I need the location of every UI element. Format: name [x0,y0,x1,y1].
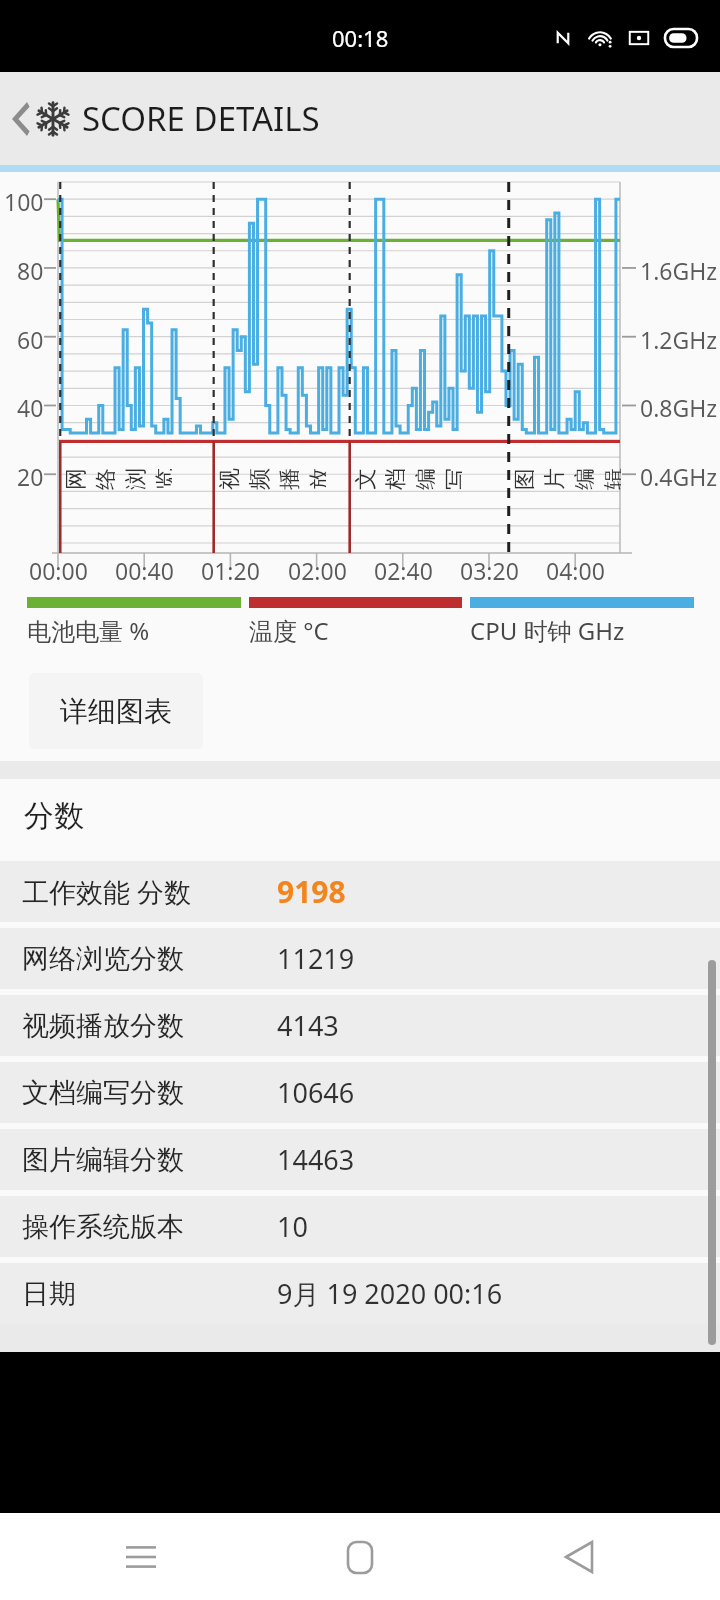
staticText: 02:00 [288,555,347,586]
staticText: 图片编辑 [511,460,621,490]
staticText: 视频播放 [216,460,326,490]
staticText: SCORE DETAILS [82,96,320,141]
button[interactable]: 视频播放分数 [0,995,720,1056]
staticText: 4143 [277,1007,339,1044]
staticText: 文档编写分数 [22,1076,277,1110]
staticText: 9198 [277,871,346,912]
staticText: 文档编写 [352,460,462,490]
staticText: 80 [17,255,44,286]
staticText: 10 [277,1208,308,1245]
button[interactable]: 网络浏览分数 [0,928,720,989]
button[interactable]: 操作系统版本 [0,1196,720,1257]
staticText: 60 [17,324,44,355]
staticText: 20 [17,461,44,492]
staticText: 03:20 [460,555,519,586]
staticText: 1.6GHz [640,255,718,286]
staticText: 网络浏览分数 [22,942,277,976]
staticText: 1.2GHz [640,324,718,355]
staticText: 0.8GHz [640,392,718,423]
staticText: 详细图表 [60,694,172,729]
staticText: 图片编辑分数 [22,1143,277,1177]
staticText: 14463 [277,1141,355,1178]
staticText: 网络浏览 [62,460,172,490]
button[interactable]: Back to score details [0,72,720,165]
button[interactable]: Recent apps [110,1526,172,1588]
staticText: 01:20 [201,555,260,586]
staticText: 视频播放分数 [22,1009,277,1043]
staticText: CPU 时钟 GHz [470,614,625,647]
staticText: 分数 [24,797,84,835]
staticText: 温度 °C [249,614,329,647]
staticText: 00:40 [115,555,174,586]
staticText: 40 [17,392,44,423]
staticText: 02:40 [374,555,433,586]
staticText: 10646 [277,1074,355,1111]
staticText: 00:00 [29,555,88,586]
staticText: 11219 [277,940,355,977]
staticText: 日期 [22,1277,277,1311]
button[interactable]: 图片编辑分数 [0,1129,720,1190]
staticText: 04:00 [546,555,605,586]
staticText: 100 [4,186,44,217]
staticText: 操作系统版本 [22,1210,277,1244]
button[interactable]: 日期 [0,1263,720,1324]
button[interactable]: Back [548,1526,610,1588]
staticText: 9月 19 2020 00:16 [277,1275,503,1312]
button[interactable]: 详细图表 [29,673,203,749]
button[interactable]: 工作效能 分数 [0,861,720,922]
button[interactable]: Home [329,1526,391,1588]
staticText: 电池电量 % [27,614,150,647]
staticText: 工作效能 分数 [22,873,277,910]
staticText: 0.4GHz [640,461,718,492]
button[interactable]: 文档编写分数 [0,1062,720,1123]
staticText: 00:18 [332,23,389,53]
